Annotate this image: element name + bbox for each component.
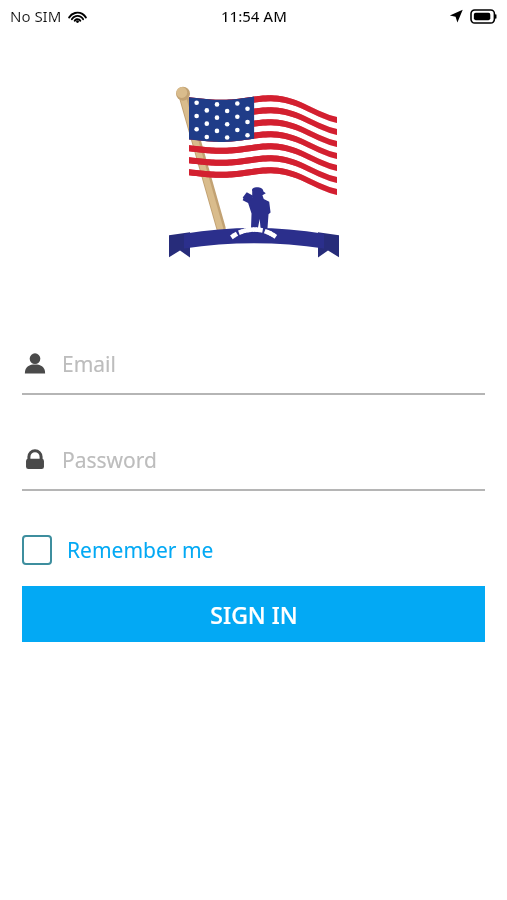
staticText: 11:54 AM [221,6,287,26]
staticText: Password [62,446,157,475]
other: Remember me checkbox [22,535,52,565]
staticText: SIGN IN [210,599,298,630]
staticText: Remember me [67,536,214,565]
staticText: Email [62,350,116,379]
button[interactable]: SIGN IN [22,586,485,642]
button[interactable]: Password [0,443,507,491]
button[interactable]: Email [0,347,507,395]
staticText: No SIM [10,6,62,26]
button[interactable]: Remember me checkbox [22,535,214,565]
